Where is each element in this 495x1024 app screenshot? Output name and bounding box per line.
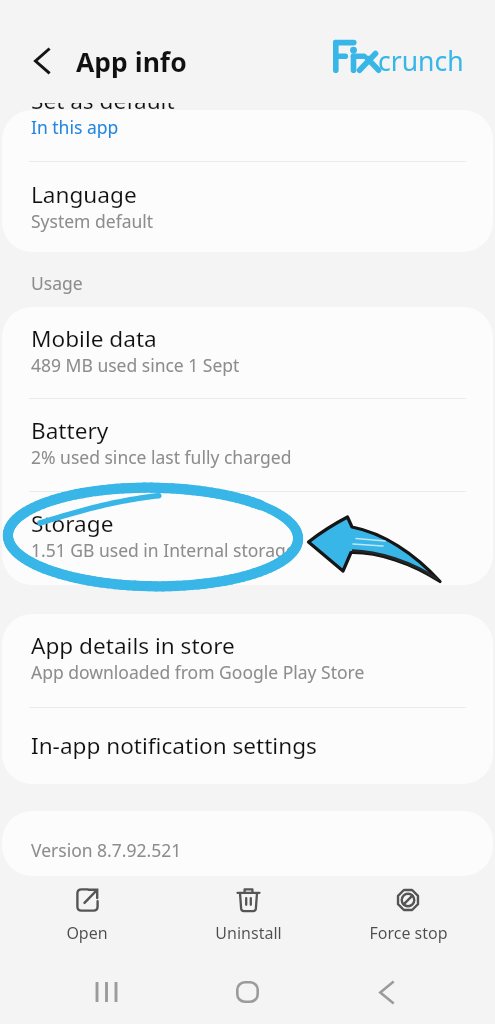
staticText: Language: [31, 179, 137, 210]
button[interactable]: Force stop: [338, 878, 478, 952]
staticText: Set as default: [31, 103, 175, 116]
staticText: crunch: [378, 43, 464, 79]
staticText: Open: [66, 922, 108, 944]
button[interactable]: App details in store: [0, 613, 495, 706]
staticText: In this app: [31, 115, 119, 139]
staticText: Force stop: [369, 922, 448, 944]
staticText: App downloaded from Google Play Store: [31, 660, 365, 684]
button[interactable]: Uninstall: [178, 878, 318, 952]
staticText: 2% used since last fully charged: [31, 445, 292, 469]
staticText: Storage: [31, 508, 114, 539]
staticText: 1.51 GB used in Internal storage: [31, 538, 296, 562]
staticText: Usage: [31, 271, 83, 295]
staticText: System default: [31, 209, 154, 233]
button[interactable]: Back: [22, 41, 62, 81]
button[interactable]: Set as default: [0, 103, 495, 156]
staticText: 489 MB used since 1 Sept: [31, 353, 240, 377]
button[interactable]: Home: [217, 962, 277, 1022]
staticText: Mobile data: [31, 323, 157, 354]
button[interactable]: Language: [0, 163, 495, 254]
button[interactable]: Mobile data: [0, 307, 495, 398]
button[interactable]: Recents: [76, 962, 136, 1022]
button[interactable]: Open: [17, 878, 157, 952]
staticText: Version 8.7.92.521: [31, 838, 182, 862]
button[interactable]: Back: [356, 962, 416, 1022]
button[interactable]: Storage: [0, 491, 495, 585]
staticText: In-app notification settings: [31, 730, 317, 761]
button[interactable]: Battery: [0, 398, 495, 491]
staticText: App details in store: [31, 630, 235, 661]
button[interactable]: In-app notification settings: [0, 707, 495, 784]
staticText: Uninstall: [215, 922, 282, 944]
staticText: Battery: [31, 415, 109, 446]
staticText: App info: [76, 44, 187, 80]
